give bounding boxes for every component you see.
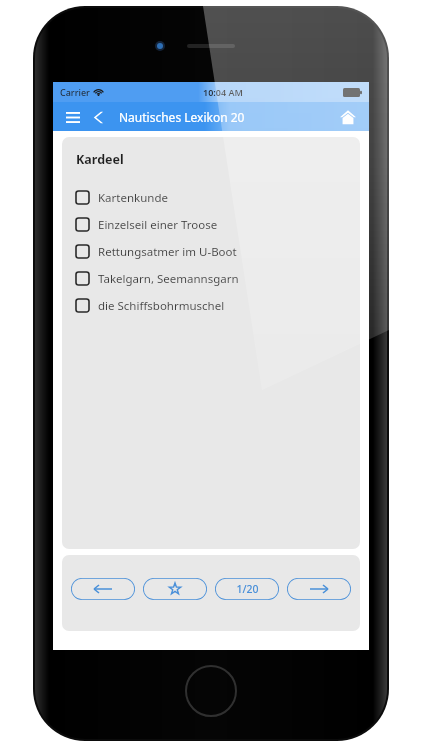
staticText: Nautisches Lexikon 20 — [119, 109, 245, 125]
button[interactable]: Next — [287, 578, 351, 600]
button[interactable]: Menu — [61, 105, 85, 129]
button[interactable]: Previous — [71, 578, 135, 600]
staticText: 10:04 AM — [203, 86, 243, 98]
button[interactable]: Back — [87, 105, 111, 129]
staticText: Kartenkunde — [98, 190, 168, 206]
staticText: 1/20 — [236, 582, 259, 596]
staticText: Einzelseil einer Troose — [98, 217, 218, 233]
button[interactable]: Kartenkunde — [76, 184, 348, 211]
staticText: Takelgarn, Seemannsgarn — [98, 271, 239, 287]
button[interactable]: Home — [335, 104, 361, 130]
button[interactable]: Favorite — [143, 578, 207, 600]
button[interactable]: Takelgarn, Seemannsgarn — [76, 265, 348, 292]
button[interactable]: Einzelseil einer Troose — [76, 211, 348, 238]
button[interactable]: die Schiffsbohrmuschel — [76, 292, 348, 319]
button[interactable]: Rettungsatmer im U-Boot — [76, 238, 348, 265]
staticText: Rettungsatmer im U-Boot — [98, 244, 237, 260]
staticText: Kardeel — [76, 151, 124, 168]
button[interactable]: 1/20 — [215, 578, 279, 600]
staticText: Carrier — [60, 86, 90, 98]
staticText: die Schiffsbohrmuschel — [98, 298, 225, 314]
